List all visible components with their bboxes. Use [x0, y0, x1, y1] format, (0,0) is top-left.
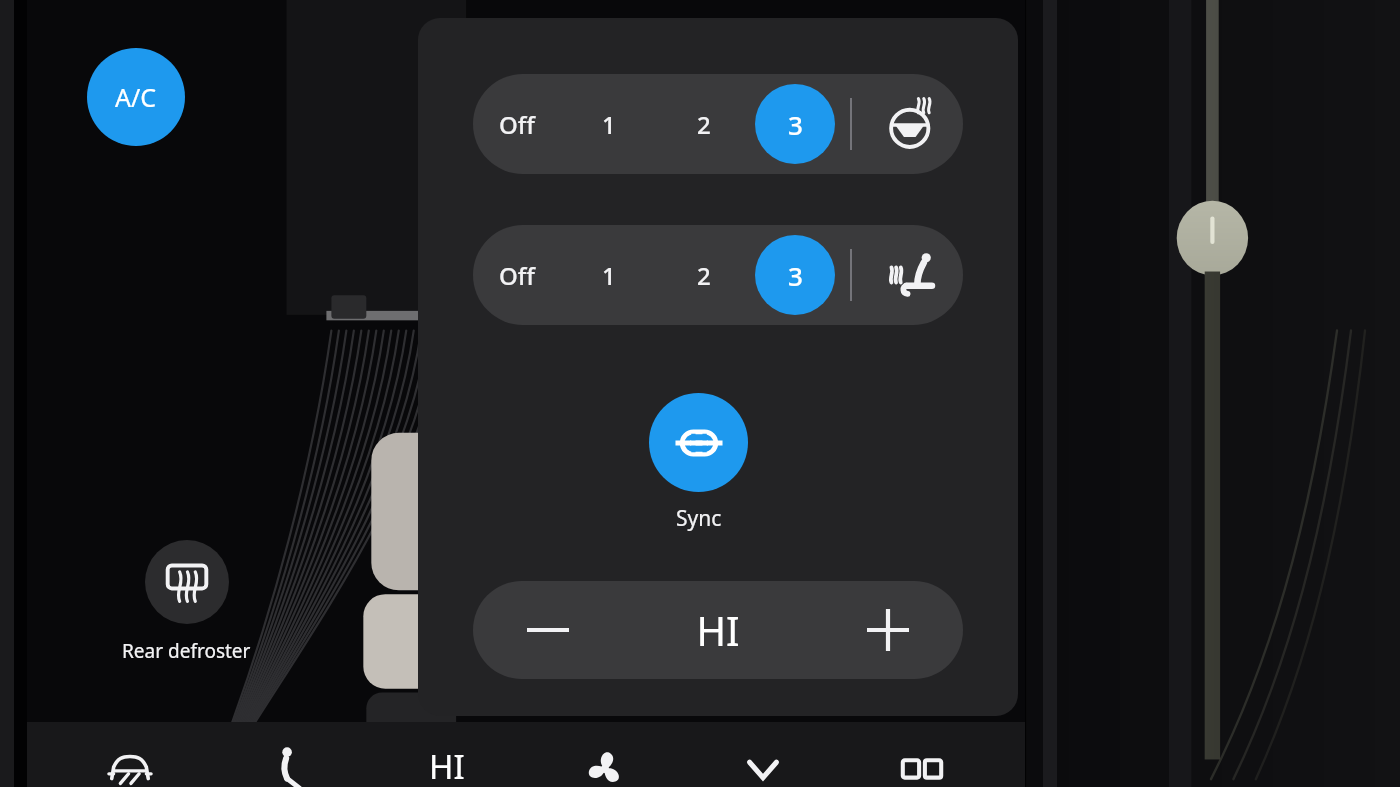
button[interactable]: 3 [751, 225, 839, 325]
staticText: 3 [788, 107, 803, 142]
button[interactable]: Seat heater [863, 225, 963, 325]
button[interactable]: Off [473, 74, 561, 174]
button[interactable]: Collapse [708, 744, 818, 787]
button[interactable]: Steering wheel heater [863, 74, 963, 174]
button[interactable]: Split screen [867, 744, 977, 787]
button[interactable]: Fan [550, 744, 660, 787]
staticText: Sync [676, 504, 722, 533]
staticText: HI [696, 603, 740, 657]
staticText: Off [499, 108, 535, 141]
other: Sync [649, 393, 748, 492]
staticText: Rear defroster [122, 638, 251, 664]
button[interactable]: 1 [561, 74, 656, 174]
button[interactable]: Windshield defrost [75, 744, 185, 787]
button[interactable]: Off [473, 225, 561, 325]
button[interactable]: 3 [751, 74, 839, 174]
staticText: A/C [115, 80, 157, 114]
staticText: HI [429, 744, 465, 787]
button[interactable]: Sync [649, 393, 748, 533]
staticText: 2 [697, 259, 711, 292]
button[interactable]: HI [392, 744, 502, 787]
button[interactable]: Decrease temperature [473, 581, 623, 679]
staticText: 2 [697, 108, 711, 141]
staticText: 3 [788, 258, 803, 293]
button[interactable]: 1 [561, 225, 656, 325]
staticText: 1 [602, 108, 616, 141]
button[interactable]: Rear defroster [122, 540, 251, 664]
button[interactable]: Seat belt [234, 744, 344, 787]
button[interactable]: Increase temperature [813, 581, 963, 679]
staticText: Off [499, 259, 535, 292]
other: Rear defroster [145, 540, 229, 624]
button[interactable]: 2 [656, 225, 751, 325]
button[interactable]: 2 [656, 74, 751, 174]
button[interactable]: A/C [87, 48, 185, 146]
staticText: 1 [602, 259, 616, 292]
